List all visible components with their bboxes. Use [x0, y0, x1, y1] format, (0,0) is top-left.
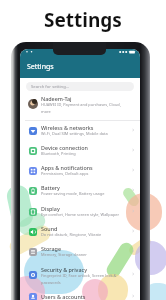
staticText: Search for setting...	[31, 84, 70, 90]
staticText: Settings	[44, 7, 122, 33]
button[interactable]: Display	[20, 202, 140, 222]
button[interactable]: Storage	[20, 242, 140, 262]
staticText: Wireless & networks	[41, 124, 94, 131]
button[interactable]: Device connection	[20, 141, 140, 161]
button[interactable]: Security & privacy	[20, 263, 140, 288]
button[interactable]: Apps & notifications	[20, 161, 140, 181]
staticText: Storage	[41, 245, 62, 252]
staticText: Security & privacy	[41, 266, 88, 273]
staticText: Fingerprint ID, Face unlock, Screen lock…	[41, 273, 117, 285]
staticText: Users & accounts	[41, 293, 86, 300]
button[interactable]: Battery	[20, 181, 140, 201]
staticText: Eye comfort, Home screen style, Wallpape…	[41, 212, 120, 217]
staticText: Bluetooth, Printing	[41, 151, 76, 156]
staticText: Memory, Storage cleaner	[41, 252, 87, 257]
staticText: Settings	[27, 62, 54, 72]
button[interactable]: Users & accounts	[20, 287, 140, 300]
button[interactable]: Wireless & networks	[20, 121, 140, 141]
staticText: Nadeem-Taj	[41, 95, 72, 102]
button[interactable]: Search for setting...	[26, 82, 134, 91]
staticText: Battery	[41, 184, 60, 191]
staticText: Do not disturb, Ringtone, Vibrate	[41, 232, 102, 237]
staticText: Power saving mode, Battery usage	[41, 191, 105, 196]
staticText: Wi-Fi, Dual SIM settings, Mobile data	[41, 131, 108, 136]
staticText: HUAWEI ID, Payment and purchases, Cloud,…	[41, 102, 121, 114]
staticText: Permissions, Default apps	[41, 171, 89, 176]
staticText: Sound	[41, 225, 58, 232]
staticText: Display	[41, 205, 60, 212]
staticText: Device connection	[41, 144, 89, 151]
button[interactable]: Sound	[20, 222, 140, 242]
staticText: Apps & notifications	[41, 164, 93, 171]
button[interactable]: Nadeem-Taj	[20, 92, 140, 120]
